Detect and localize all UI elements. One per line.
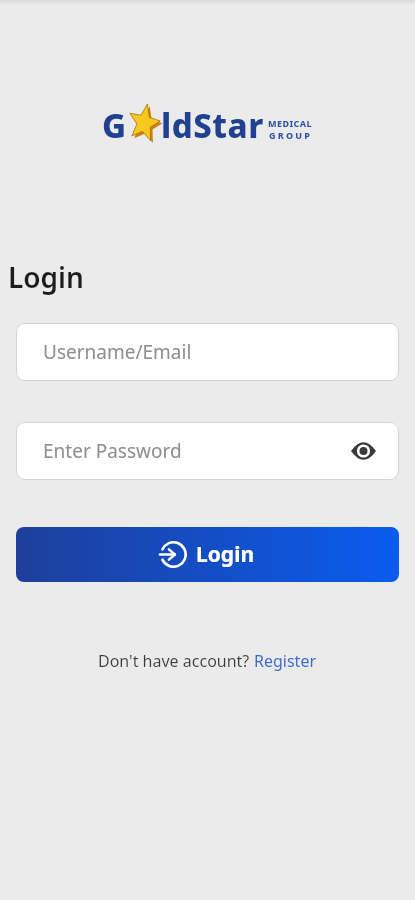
staticText: MEDICAL xyxy=(268,117,313,129)
staticText: Don't have account? xyxy=(98,650,254,672)
staticText: Login xyxy=(8,258,84,296)
staticText: G xyxy=(102,103,127,143)
staticText: Enter Password xyxy=(43,438,182,464)
button[interactable] xyxy=(351,441,376,461)
button[interactable]: Enter Password xyxy=(16,422,399,480)
staticText: Login xyxy=(196,540,255,569)
staticText: ldStar xyxy=(161,103,264,143)
staticText: GROUP xyxy=(269,129,313,141)
button[interactable]: Username/Email xyxy=(16,323,399,381)
button[interactable]: Login xyxy=(16,527,399,582)
staticText: Register xyxy=(254,650,317,672)
button[interactable]: Register xyxy=(254,650,317,672)
staticText: Username/Email xyxy=(43,339,192,365)
